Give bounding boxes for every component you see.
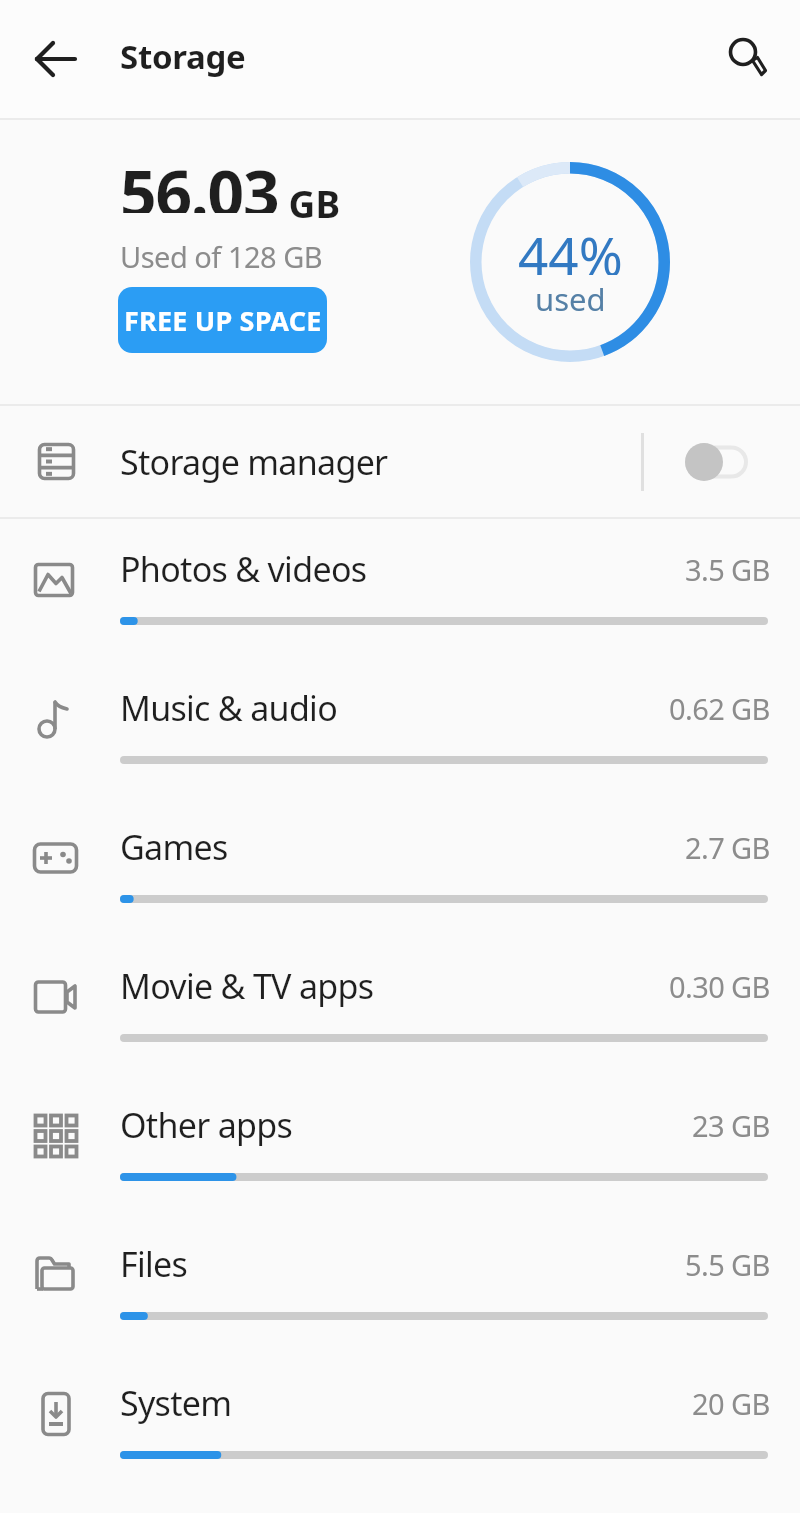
- button[interactable]: Movie & TV apps: [0, 936, 800, 1075]
- staticText: GB: [279, 178, 341, 228]
- staticText: 44%: [518, 219, 623, 275]
- button[interactable]: Games: [0, 797, 800, 936]
- staticText: Music & audio: [120, 685, 338, 731]
- staticText: Files: [120, 1241, 188, 1287]
- button[interactable]: System: [0, 1353, 800, 1492]
- staticText: 23 GB: [692, 1106, 770, 1145]
- staticText: Used of 128 GB: [120, 237, 323, 276]
- staticText: Other apps: [120, 1102, 293, 1148]
- button[interactable]: [685, 442, 747, 482]
- staticText: 0.30 GB: [669, 967, 770, 1006]
- staticText: Storage: [120, 34, 246, 79]
- button[interactable]: Photos & videos: [0, 519, 800, 658]
- staticText: 3.5 GB: [685, 550, 770, 589]
- button[interactable]: Other apps: [0, 1075, 800, 1214]
- button[interactable]: [722, 33, 774, 85]
- staticText: 5.5 GB: [685, 1245, 770, 1284]
- staticText: Photos & videos: [120, 546, 367, 592]
- button[interactable]: Storage manager: [0, 406, 800, 517]
- staticText: Storage manager: [120, 439, 388, 485]
- staticText: Movie & TV apps: [120, 963, 374, 1009]
- button[interactable]: Files: [0, 1214, 800, 1353]
- staticText: 2.7 GB: [685, 828, 770, 867]
- staticText: System: [120, 1380, 232, 1426]
- button[interactable]: FREE UP SPACE: [118, 287, 327, 353]
- button[interactable]: [30, 33, 82, 85]
- button[interactable]: Music & audio: [0, 658, 800, 797]
- staticText: 56.03: [120, 149, 279, 213]
- staticText: 0.62 GB: [669, 689, 770, 728]
- staticText: FREE UP SPACE: [124, 302, 322, 339]
- staticText: 20 GB: [692, 1384, 770, 1423]
- staticText: Games: [120, 824, 228, 870]
- staticText: used: [535, 278, 606, 314]
